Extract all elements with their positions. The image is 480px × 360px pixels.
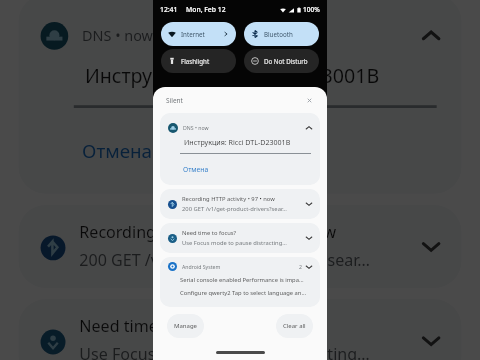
- staticText: Do Not Disturb: [264, 57, 308, 65]
- staticText: Recording HTTP activity • 97 • now: [182, 195, 275, 203]
- button[interactable]: Clear all: [276, 314, 313, 338]
- button[interactable]: Internet: [161, 22, 236, 46]
- staticText: Инструкция: Ricci DTL-D23001B: [184, 137, 291, 147]
- staticText: Need time to focus?: [79, 316, 232, 338]
- button[interactable]: Collapse: [417, 22, 445, 50]
- staticText: Configure qwerty2 Tap to select language…: [180, 289, 306, 297]
- staticText: Clear all: [283, 322, 306, 330]
- button[interactable]: Expand: [304, 199, 314, 209]
- staticText: Отмена: [82, 138, 154, 163]
- staticText: Отмена: [183, 165, 209, 174]
- button[interactable]: Android System: [160, 257, 320, 307]
- button[interactable]: Collapse: [304, 123, 314, 133]
- staticText: DNS • now: [183, 124, 209, 131]
- button[interactable]: Need time to focus?: [160, 223, 320, 253]
- staticText: 200 GET /v1/get-product-drivers?sear…: [182, 205, 287, 213]
- staticText: Manage: [174, 322, 197, 330]
- staticText: Flashlight: [181, 57, 210, 65]
- button[interactable]: Clear: [305, 96, 314, 105]
- button[interactable]: Bluetooth: [244, 22, 319, 46]
- staticText: Use Focus mode to pause distracting…: [182, 239, 287, 247]
- button[interactable]: Expand: [304, 233, 314, 243]
- button[interactable]: Flashlight: [161, 49, 236, 73]
- button[interactable]: Recording HTTP activity • 97 • now: [160, 189, 320, 219]
- staticText: Android System: [182, 263, 221, 270]
- staticText: Mon, Feb 12: [186, 5, 226, 14]
- staticText: DNS • now: [82, 25, 154, 44]
- button[interactable]: Need time to focus?: [18, 299, 462, 360]
- button[interactable]: Expand: [417, 327, 445, 354]
- staticText: Internet: [181, 30, 205, 38]
- staticText: Silent: [166, 96, 183, 105]
- button[interactable]: Manage: [167, 314, 204, 338]
- button[interactable]: Recording HTTP activity • 97 • now: [18, 205, 462, 288]
- button[interactable]: Expand: [304, 262, 314, 272]
- button[interactable]: DNS • now: [160, 113, 320, 185]
- staticText: Recording HTTP activity • 97 • now: [79, 222, 337, 244]
- staticText: 100%: [303, 5, 320, 14]
- button[interactable]: Expand: [417, 233, 445, 260]
- staticText: Serial console enabled Performance is im…: [180, 276, 304, 284]
- staticText: 200 GET /v1/get-product-drivers?sear…: [79, 249, 370, 271]
- button[interactable]: DNS • now: [18, 0, 462, 194]
- button[interactable]: Do Not Disturb: [244, 49, 319, 73]
- staticText: Bluetooth: [264, 30, 293, 38]
- staticText: Use Focus mode to pause distracting…: [79, 343, 370, 360]
- staticText: Инструкция: Ricci DTL-D23001B: [85, 61, 381, 89]
- staticText: 12:41: [160, 5, 178, 14]
- staticText: Need time to focus?: [182, 229, 237, 237]
- staticText: 2: [299, 263, 302, 270]
